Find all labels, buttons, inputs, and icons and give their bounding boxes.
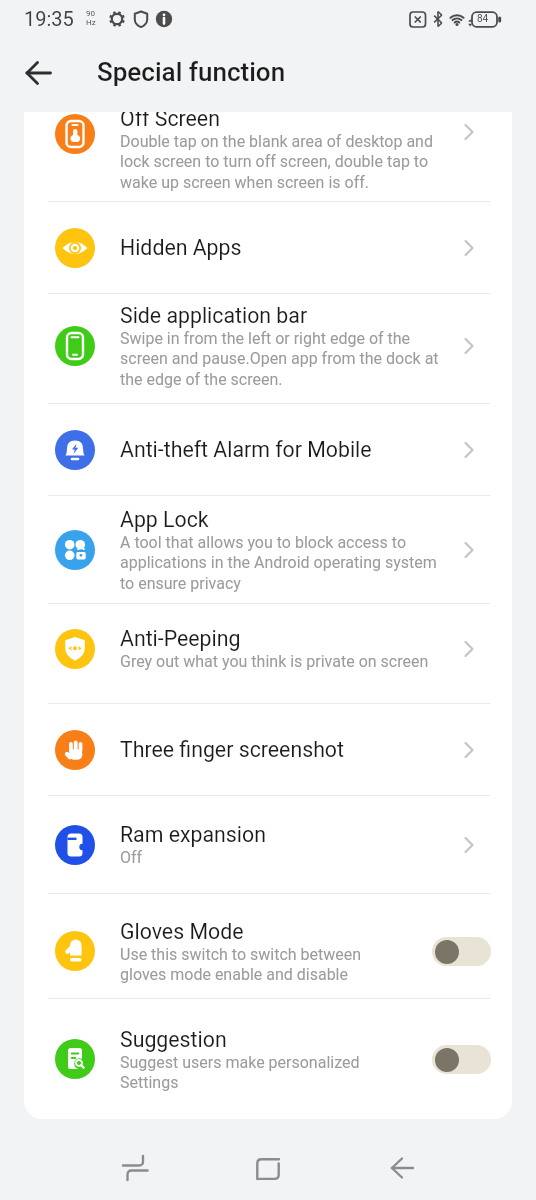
button[interactable]: Three finger screenshot <box>24 704 512 795</box>
button[interactable] <box>432 1045 491 1074</box>
staticText: Suggest users make personalized Settings <box>120 1053 360 1092</box>
staticText: Off Screen <box>120 112 220 131</box>
button[interactable]: Anti-theft Alarm for Mobile <box>24 404 512 495</box>
button[interactable]: Off Screen <box>24 112 512 201</box>
staticText: Suggestion <box>120 1027 227 1052</box>
button[interactable]: Gloves Mode <box>24 894 512 998</box>
button[interactable]: Hidden Apps <box>24 202 512 293</box>
button[interactable] <box>357 1119 536 1200</box>
staticText: Grey out what you think is private on sc… <box>120 652 429 671</box>
button[interactable] <box>432 937 491 966</box>
staticText: 19:35 <box>24 7 74 30</box>
staticText: Special function <box>97 57 286 87</box>
staticText: Anti-Peeping <box>120 626 241 651</box>
staticText: Swipe in from the left or right edge of … <box>120 329 439 389</box>
button[interactable] <box>0 1119 178 1200</box>
staticText: Use this switch to switch between gloves… <box>120 945 362 984</box>
staticText: Ram expansion <box>120 822 266 847</box>
button[interactable]: Ram expansion <box>24 796 512 893</box>
staticText: Off <box>120 848 143 867</box>
staticText: Double tap on the blank area of desktop … <box>120 132 433 192</box>
button[interactable] <box>17 53 57 93</box>
button[interactable]: Anti-Peeping <box>24 604 512 703</box>
staticText: A tool that allows you to block access t… <box>120 533 437 593</box>
button[interactable] <box>178 1119 357 1200</box>
staticText: 90 <box>86 9 95 18</box>
staticText: Hidden Apps <box>120 235 242 260</box>
staticText: Side application bar <box>120 303 308 328</box>
staticText: Three finger screenshot <box>120 737 344 762</box>
staticText: Anti-theft Alarm for Mobile <box>120 437 372 462</box>
button[interactable]: Suggestion <box>24 999 512 1119</box>
staticText: Hz <box>86 18 96 27</box>
button[interactable]: App Lock <box>24 496 512 603</box>
staticText: App Lock <box>120 507 209 532</box>
staticText: Gloves Mode <box>120 919 244 944</box>
staticText: 84 <box>477 13 489 25</box>
button[interactable]: Side application bar <box>24 294 512 403</box>
